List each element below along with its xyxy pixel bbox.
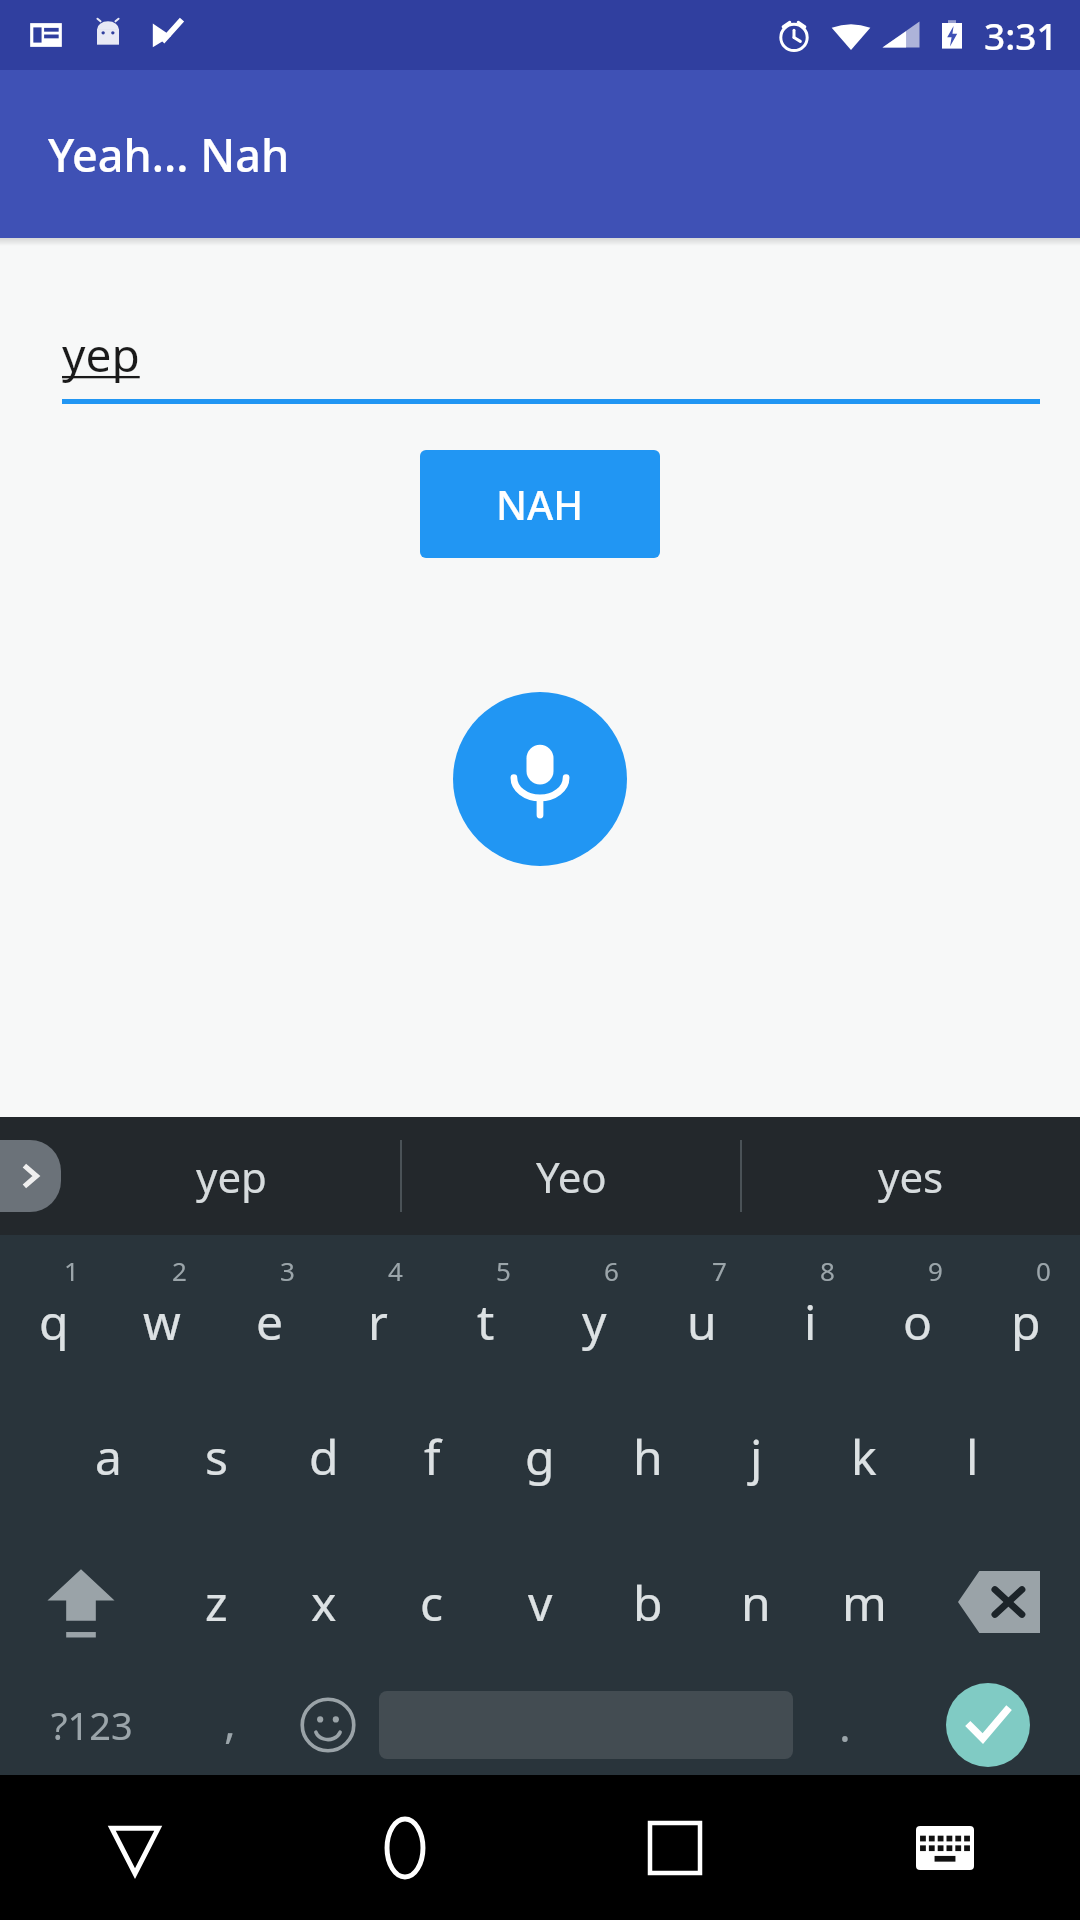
staticText: Yeah... Nah — [48, 124, 290, 185]
staticText: i — [804, 1289, 817, 1354]
staticText: 3 — [280, 1253, 295, 1288]
button[interactable]: f — [378, 1383, 486, 1529]
button[interactable]: 1 — [0, 1235, 108, 1383]
button[interactable]: Home — [270, 1775, 540, 1920]
button[interactable]: b — [594, 1529, 702, 1675]
staticText: a — [95, 1424, 122, 1489]
staticText: d — [309, 1424, 339, 1489]
staticText: 6 — [604, 1253, 619, 1288]
button[interactable]: yes — [742, 1117, 1080, 1235]
button[interactable]: g — [486, 1383, 594, 1529]
button[interactable]: h — [594, 1383, 702, 1529]
button[interactable]: , — [184, 1675, 276, 1775]
button[interactable]: 0 — [972, 1235, 1080, 1383]
staticText: . — [839, 1695, 851, 1755]
button[interactable]: NAH — [420, 450, 660, 558]
staticText: w — [143, 1289, 181, 1354]
button[interactable]: 2 — [108, 1235, 216, 1383]
button[interactable]: 9 — [864, 1235, 972, 1383]
button[interactable]: 3 — [216, 1235, 324, 1383]
button[interactable]: Yeo — [402, 1117, 740, 1235]
staticText: m — [842, 1570, 887, 1635]
staticText: 1 — [64, 1253, 79, 1288]
staticText: 9 — [928, 1253, 943, 1288]
button[interactable]: 6 — [540, 1235, 648, 1383]
staticText: r — [368, 1289, 388, 1354]
button[interactable]: a — [54, 1383, 162, 1529]
staticText: 7 — [712, 1253, 727, 1288]
button[interactable]: c — [378, 1529, 486, 1675]
button[interactable]: Hide keyboard — [810, 1775, 1080, 1920]
staticText: x — [311, 1570, 337, 1635]
staticText: p — [1011, 1289, 1041, 1354]
button[interactable]: Back — [0, 1775, 270, 1920]
staticText: s — [205, 1424, 228, 1489]
button[interactable]: k — [810, 1383, 918, 1529]
staticText: e — [256, 1289, 284, 1354]
staticText: 2 — [172, 1253, 187, 1288]
staticText: 8 — [820, 1253, 835, 1288]
button[interactable]: x — [270, 1529, 378, 1675]
staticText: yep — [62, 323, 140, 386]
staticText: NAH — [496, 477, 584, 531]
staticText: o — [903, 1289, 933, 1354]
staticText: f — [424, 1424, 441, 1489]
button[interactable]: Space — [379, 1675, 793, 1775]
staticText: t — [477, 1289, 495, 1354]
staticText: , — [224, 1691, 236, 1751]
button[interactable]: . — [793, 1675, 896, 1775]
staticText: 4 — [388, 1253, 403, 1288]
staticText: c — [420, 1570, 444, 1635]
button[interactable]: l — [918, 1383, 1026, 1529]
button[interactable]: s — [162, 1383, 270, 1529]
staticText: g — [525, 1424, 555, 1489]
staticText: n — [741, 1570, 771, 1635]
staticText: yep — [196, 1148, 267, 1205]
button[interactable]: Enter — [896, 1675, 1080, 1775]
button[interactable]: v — [486, 1529, 594, 1675]
button[interactable]: yep — [62, 323, 1040, 404]
button[interactable]: d — [270, 1383, 378, 1529]
button[interactable]: Voice input — [453, 692, 627, 866]
staticText: l — [966, 1424, 979, 1489]
button[interactable]: yep — [62, 1117, 400, 1235]
staticText: ?123 — [51, 1699, 133, 1751]
button[interactable]: 7 — [648, 1235, 756, 1383]
staticText: yes — [878, 1148, 944, 1205]
button[interactable]: Expand suggestions — [0, 1140, 61, 1212]
staticText: q — [39, 1289, 69, 1354]
button[interactable]: m — [810, 1529, 918, 1675]
button[interactable]: Backspace — [918, 1529, 1080, 1675]
button[interactable]: Shift — [0, 1529, 162, 1675]
staticText: v — [528, 1570, 553, 1635]
button[interactable]: 5 — [432, 1235, 540, 1383]
staticText: u — [687, 1289, 717, 1354]
staticText: y — [582, 1289, 607, 1354]
staticText: z — [205, 1570, 228, 1635]
staticText: j — [750, 1424, 763, 1489]
staticText: Yeo — [536, 1148, 607, 1205]
button[interactable]: 8 — [756, 1235, 864, 1383]
staticText: b — [633, 1570, 663, 1635]
button[interactable]: z — [162, 1529, 270, 1675]
staticText: 3:31 — [984, 10, 1058, 60]
staticText: k — [851, 1424, 877, 1489]
button[interactable]: Emoji — [276, 1675, 379, 1775]
staticText: h — [633, 1424, 663, 1489]
button[interactable]: Recents — [540, 1775, 810, 1920]
button[interactable]: ?123 — [0, 1675, 184, 1775]
staticText: 0 — [1036, 1253, 1051, 1288]
staticText: 5 — [496, 1253, 511, 1288]
button[interactable]: n — [702, 1529, 810, 1675]
button[interactable]: j — [702, 1383, 810, 1529]
button[interactable]: 4 — [324, 1235, 432, 1383]
